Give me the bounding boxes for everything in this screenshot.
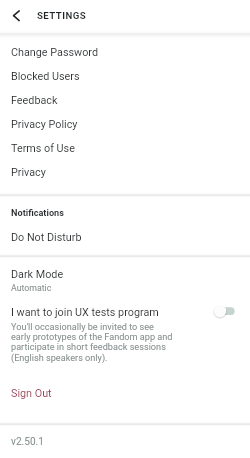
staticText: Change Password <box>11 46 98 59</box>
button[interactable] <box>0 36 250 60</box>
button[interactable]: Join UX tests program <box>208 300 242 322</box>
button[interactable] <box>0 264 250 294</box>
button[interactable] <box>0 156 250 180</box>
staticText: I want to join UX tests program <box>11 306 159 319</box>
staticText: Privacy <box>11 166 46 179</box>
button[interactable] <box>0 382 250 404</box>
button[interactable] <box>0 226 250 248</box>
staticText: v2.50.1 <box>11 436 44 448</box>
button[interactable] <box>0 108 250 132</box>
button[interactable] <box>30 0 100 31</box>
button[interactable] <box>0 132 250 156</box>
staticText: Dark Mode <box>11 268 64 281</box>
staticText: Notifications <box>11 208 64 219</box>
staticText: Automatic <box>11 283 52 293</box>
staticText: Privacy Policy <box>11 118 78 131</box>
staticText: Blocked Users <box>11 70 80 83</box>
staticText: Feedback <box>11 94 58 107</box>
staticText: You'll occasionally be invited to see <box>11 322 154 333</box>
button[interactable]: Back <box>2 1 32 31</box>
staticText: (English speakers only). <box>11 353 108 364</box>
staticText: Do Not Disturb <box>11 231 82 244</box>
staticText: SETTINGS <box>37 10 86 21</box>
button[interactable] <box>0 60 250 84</box>
staticText: early prototypes of the Fandom app and <box>11 332 173 343</box>
staticText: Terms of Use <box>11 142 75 155</box>
staticText: Sign Out <box>11 387 52 400</box>
staticText: participate in short feedback sessions <box>11 342 166 353</box>
button[interactable] <box>0 84 250 108</box>
